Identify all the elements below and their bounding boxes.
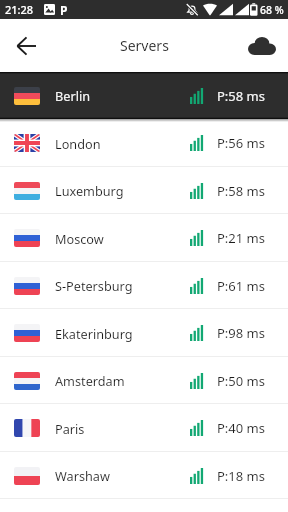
staticText: P:98 ms (217, 324, 265, 342)
staticText: P:18 ms (217, 467, 265, 485)
button[interactable]: Moscow (0, 214, 288, 262)
staticText: Moscow (55, 230, 104, 247)
staticText: London (55, 135, 101, 152)
button[interactable]: London (0, 119, 288, 167)
button[interactable]: S-Petersburg (0, 262, 288, 309)
staticText: P:58 ms (217, 87, 265, 105)
staticText: 68 % (260, 3, 284, 17)
button[interactable]: Warshaw (0, 452, 288, 499)
staticText: P:50 ms (217, 372, 265, 390)
staticText: Amsterdam (55, 372, 125, 389)
button[interactable]: Ekaterinburg (0, 309, 288, 357)
staticText: P:56 ms (217, 134, 265, 152)
staticText: Paris (55, 420, 85, 437)
button[interactable]: Amsterdam (0, 357, 288, 404)
staticText: Warshaw (55, 467, 110, 484)
staticText: Luxemburg (55, 182, 124, 199)
staticText: P:21 ms (217, 229, 265, 247)
staticText: Berlin (55, 87, 91, 104)
staticText: P:58 ms (217, 182, 265, 200)
button[interactable]: Luxemburg (0, 167, 288, 214)
staticText: P (60, 2, 68, 18)
button[interactable]: Cloud sync (245, 29, 279, 63)
staticText: P:61 ms (217, 277, 265, 295)
staticText: S-Petersburg (55, 277, 133, 294)
button[interactable]: Berlin (0, 72, 288, 119)
staticText: Ekaterinburg (55, 325, 133, 342)
button[interactable]: Paris (0, 404, 288, 452)
staticText: 21:28 (5, 2, 34, 17)
staticText: P:40 ms (217, 419, 265, 437)
button[interactable]: Back (9, 29, 43, 63)
staticText: Servers (120, 36, 169, 55)
